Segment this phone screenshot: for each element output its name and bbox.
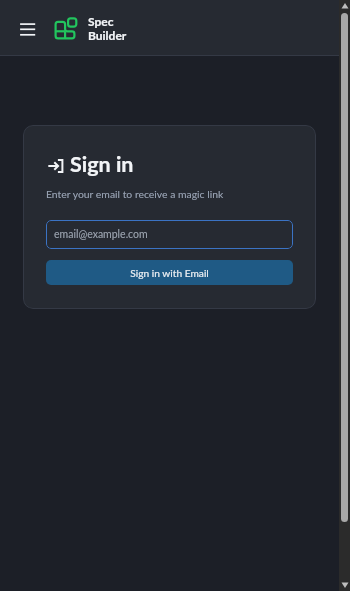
staticText: email@example.com bbox=[54, 228, 148, 241]
button[interactable]: Sign in with Email bbox=[46, 260, 293, 285]
button[interactable]: Scroll up bbox=[339, 0, 350, 12]
staticText: Enter your email to receive a magic link bbox=[46, 188, 224, 200]
staticText: Builder bbox=[88, 28, 127, 42]
staticText: Sign in with Email bbox=[130, 267, 209, 279]
button[interactable]: Open navigation menu bbox=[16, 16, 40, 40]
staticText: Sign in bbox=[70, 151, 134, 177]
button[interactable]: email@example.com bbox=[46, 220, 293, 249]
staticText: Spec bbox=[88, 14, 114, 28]
button[interactable]: Scroll down bbox=[339, 579, 350, 591]
button[interactable]: Spec bbox=[54, 14, 127, 42]
